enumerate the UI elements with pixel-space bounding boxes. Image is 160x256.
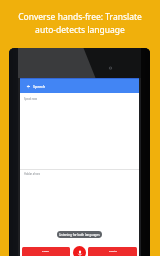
button[interactable]: Back: [20, 79, 33, 93]
button[interactable]: Microphone: [73, 246, 86, 256]
staticText: English: [42, 250, 50, 253]
staticText: Hablar ahora: [24, 172, 40, 176]
button[interactable]: Back: [20, 79, 139, 93]
staticText: auto-detects language: [35, 24, 125, 36]
button[interactable]: English: [22, 247, 70, 256]
staticText: Speak now: [24, 97, 38, 101]
button[interactable]: Listening for both languages: [57, 231, 102, 238]
button[interactable]: español: [88, 247, 137, 256]
staticText: Converse hands-free: Translate: [18, 11, 142, 23]
staticText: Listening for both languages: [59, 233, 100, 237]
staticText: Speech: [33, 84, 46, 89]
staticText: español: [109, 250, 117, 253]
